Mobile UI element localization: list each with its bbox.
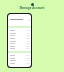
staticText: Manage Account <box>19 6 45 10</box>
